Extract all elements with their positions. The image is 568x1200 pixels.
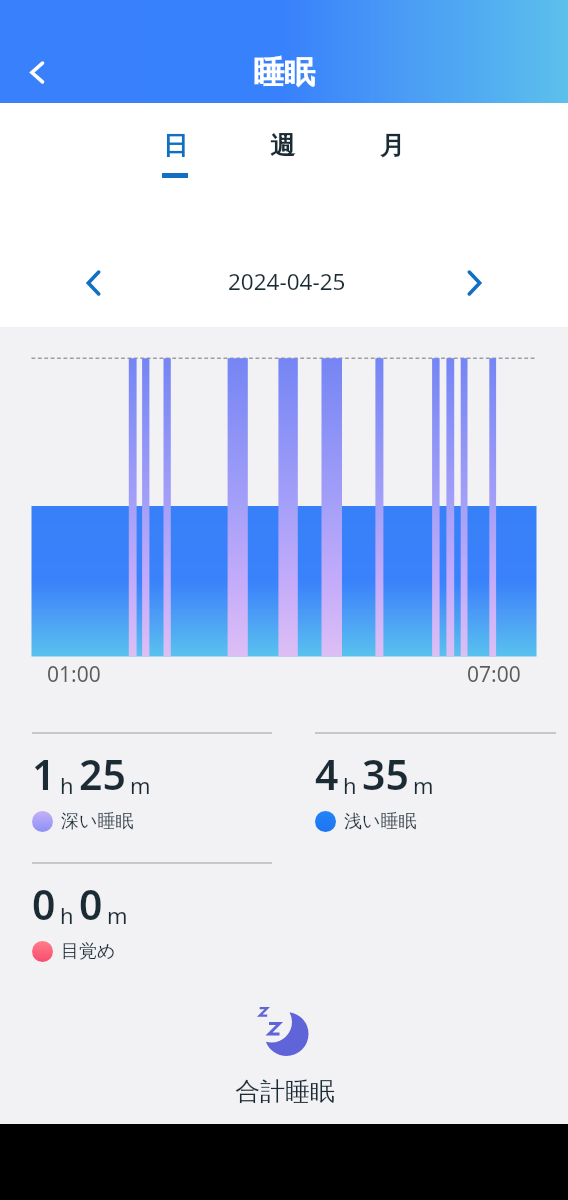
staticText: h <box>60 900 74 930</box>
staticText: 日 <box>163 130 188 161</box>
staticText: 0 <box>32 876 56 932</box>
staticText: 35 <box>362 746 409 802</box>
button[interactable]: 合計睡眠 <box>235 1076 335 1107</box>
staticText: 月 <box>380 130 405 161</box>
staticText: m <box>107 900 128 930</box>
button[interactable]: Total sleep <box>238 998 330 1062</box>
button[interactable]: 週 <box>250 130 314 173</box>
staticText: 2024-04-25 <box>228 266 346 297</box>
staticText: m <box>413 770 434 800</box>
button[interactable]: Next day <box>452 260 498 306</box>
button[interactable]: 日 <box>143 130 207 178</box>
button[interactable]: Back <box>13 49 59 95</box>
staticText: 浅い睡眠 <box>344 810 417 833</box>
staticText: 4 <box>315 746 339 802</box>
staticText: h <box>60 770 74 800</box>
staticText: h <box>343 770 357 800</box>
staticText: 睡眠 <box>253 53 315 92</box>
staticText: 0 <box>79 876 103 932</box>
staticText: 25 <box>79 746 126 802</box>
staticText: 週 <box>270 130 295 161</box>
button[interactable]: 月 <box>360 130 424 173</box>
staticText: m <box>130 770 151 800</box>
button[interactable]: 0 <box>32 876 282 963</box>
staticText: 深い睡眠 <box>61 810 134 833</box>
staticText: 目覚め <box>61 940 116 963</box>
staticText: 07:00 <box>467 660 521 689</box>
staticText: 1 <box>32 746 56 802</box>
button[interactable]: Previous day <box>70 260 116 306</box>
staticText: 01:00 <box>47 660 101 689</box>
button[interactable]: 1 <box>32 746 282 833</box>
button[interactable]: 4 <box>315 746 565 833</box>
